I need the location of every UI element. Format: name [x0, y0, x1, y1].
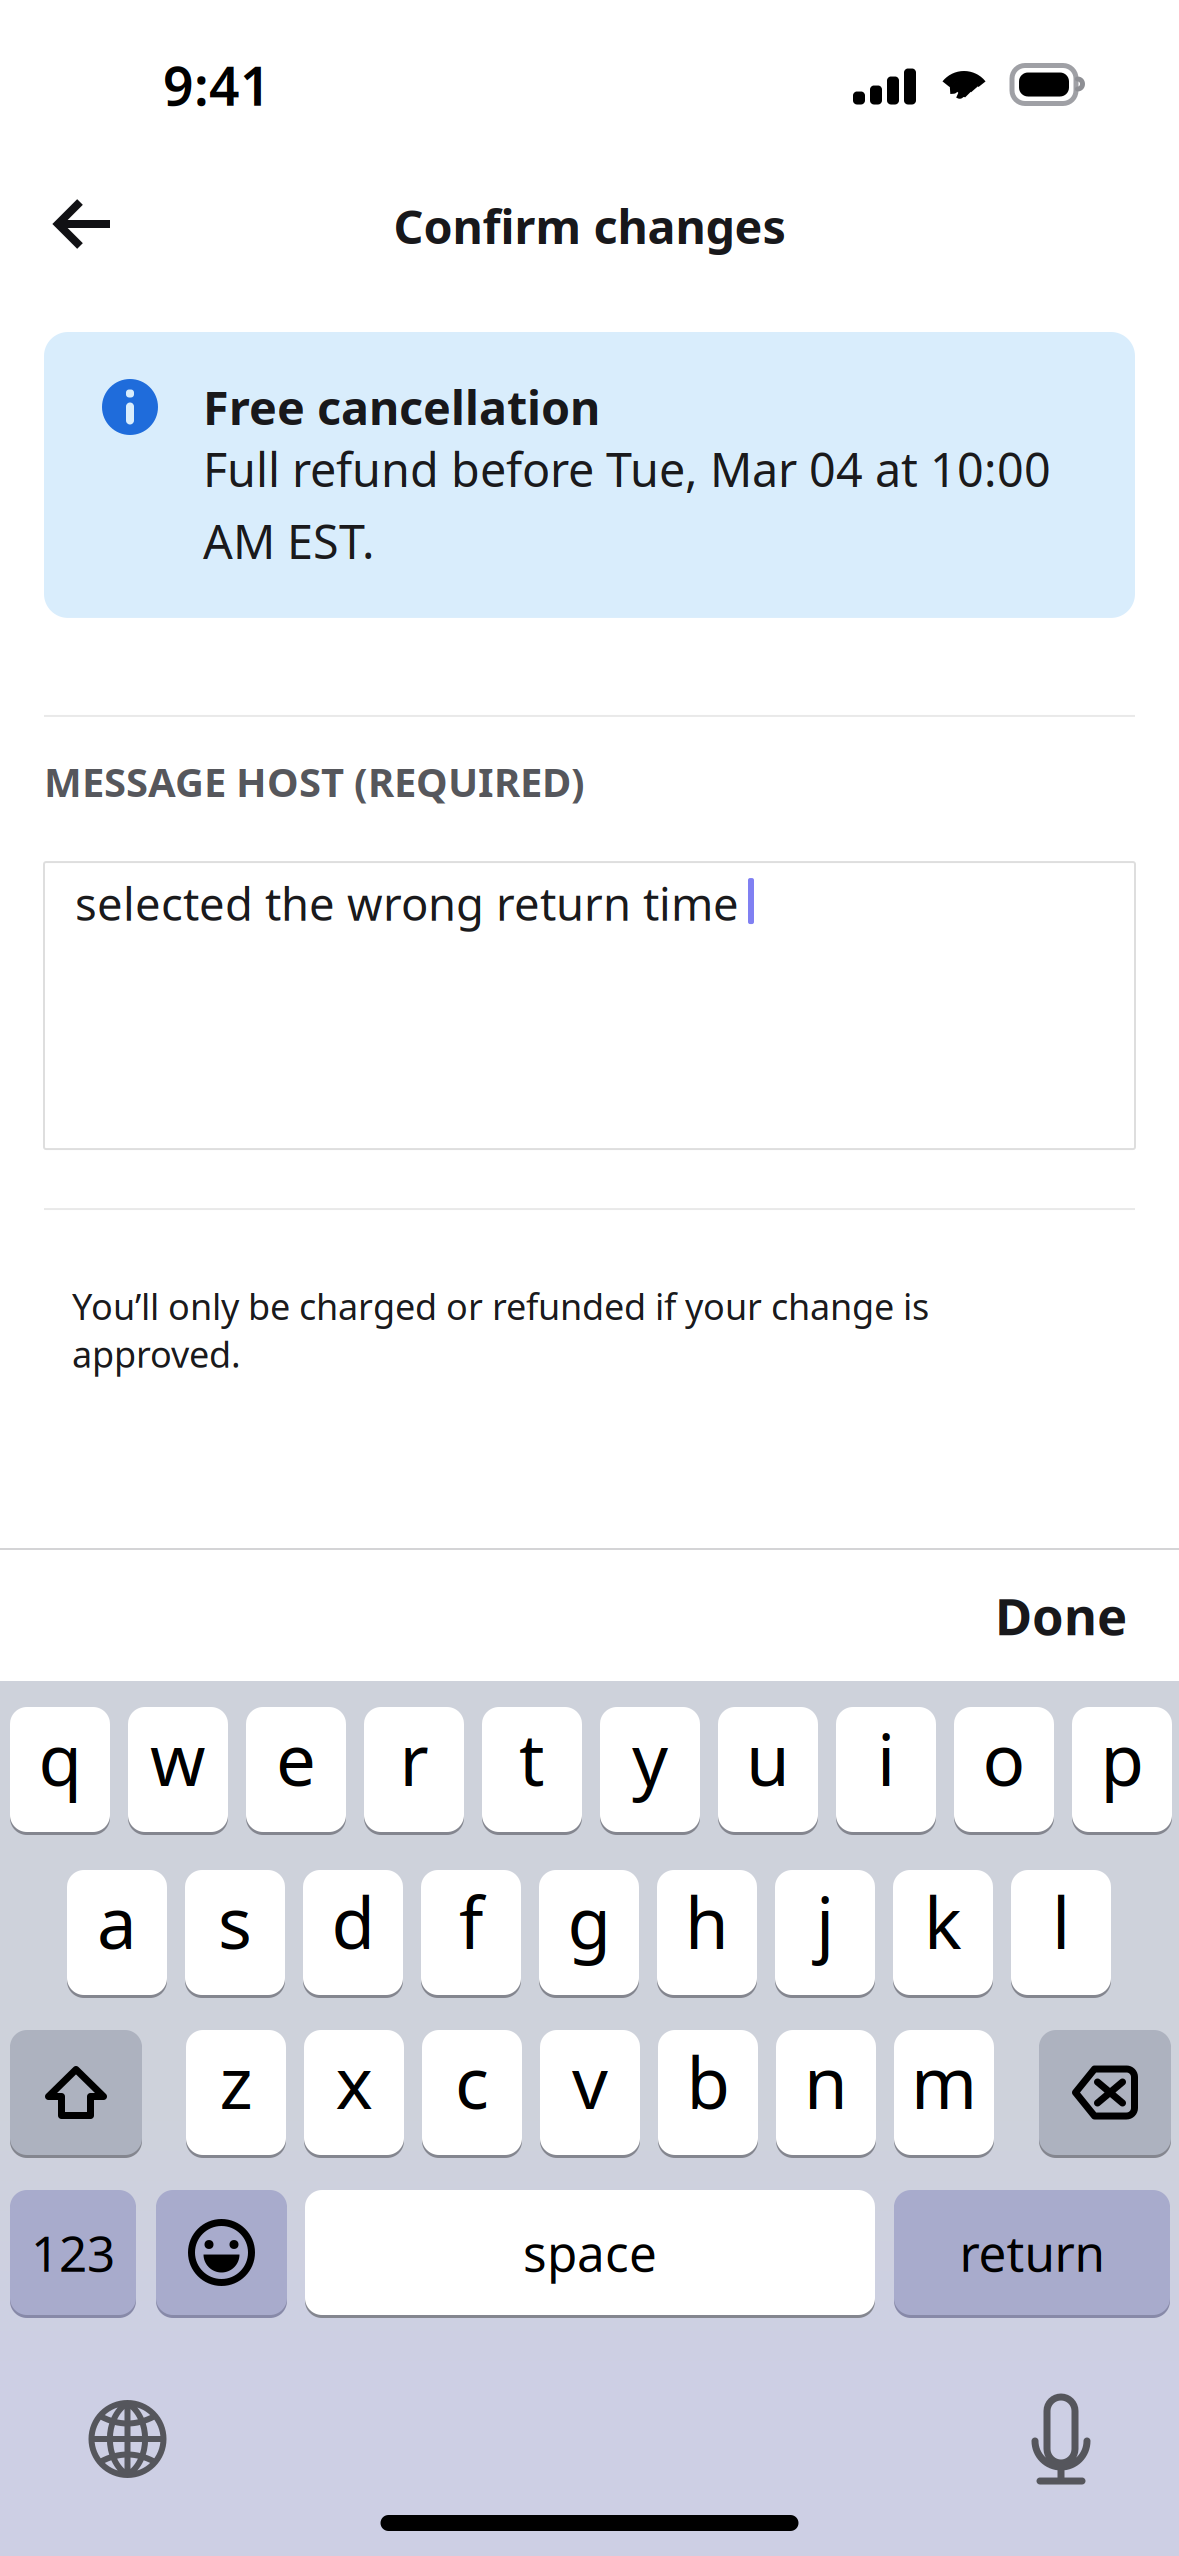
staticText: j — [816, 1875, 834, 1968]
staticText: z — [219, 2035, 252, 2128]
staticText: Done — [995, 1582, 1127, 1649]
button[interactable]: h — [657, 1870, 757, 1995]
button[interactable]: Shift — [10, 2030, 142, 2155]
button[interactable]: j — [775, 1870, 875, 1995]
staticText: space — [523, 2220, 657, 2285]
button[interactable]: 123 — [10, 2190, 136, 2315]
staticText: p — [1100, 1712, 1143, 1805]
button[interactable]: g — [539, 1870, 639, 1995]
staticText: g — [567, 1875, 610, 1968]
button[interactable]: Emoji — [156, 2190, 287, 2315]
staticText: w — [150, 1712, 206, 1805]
staticText: q — [38, 1712, 81, 1805]
button[interactable]: return — [894, 2190, 1170, 2315]
button[interactable]: i — [836, 1707, 936, 1832]
staticText: m — [911, 2035, 977, 2128]
button[interactable]: Next keyboard — [66, 2377, 189, 2500]
staticText: Confirm changes — [393, 195, 785, 257]
button[interactable]: x — [304, 2030, 404, 2155]
button[interactable]: a — [67, 1870, 167, 1995]
staticText: 9:41 — [163, 50, 271, 120]
staticText: Full refund before Tue, Mar 04 at 10:00 … — [203, 438, 1051, 572]
staticText: b — [686, 2035, 729, 2128]
button[interactable]: f — [421, 1870, 521, 1995]
button[interactable]: Done — [943, 1548, 1179, 1683]
button[interactable]: space — [305, 2190, 875, 2315]
button[interactable]: p — [1072, 1707, 1172, 1832]
button[interactable]: r — [364, 1707, 464, 1832]
button[interactable]: Dictate — [1013, 2373, 1109, 2505]
staticText: v — [572, 2035, 608, 2128]
button[interactable]: Delete — [1039, 2030, 1171, 2155]
staticText: MESSAGE HOST (REQUIRED) — [44, 755, 585, 808]
staticText: o — [982, 1712, 1025, 1805]
staticText: k — [924, 1875, 962, 1968]
button[interactable]: o — [954, 1707, 1054, 1832]
staticText: s — [218, 1875, 252, 1968]
button[interactable]: w — [128, 1707, 228, 1832]
button[interactable]: q — [10, 1707, 110, 1832]
staticText: l — [1052, 1875, 1070, 1968]
button[interactable]: Back — [0, 173, 154, 297]
staticText: return — [959, 2220, 1104, 2285]
staticText: t — [519, 1712, 545, 1805]
button[interactable]: b — [658, 2030, 758, 2155]
staticText: selected the wrong return time — [75, 873, 739, 933]
staticText: e — [276, 1712, 316, 1805]
button[interactable]: z — [186, 2030, 286, 2155]
button[interactable]: n — [776, 2030, 876, 2155]
button[interactable]: e — [246, 1707, 346, 1832]
button[interactable]: m — [894, 2030, 994, 2155]
staticText: i — [877, 1712, 895, 1805]
staticText: 123 — [31, 2220, 115, 2285]
staticText: n — [804, 2035, 848, 2128]
staticText: c — [455, 2035, 489, 2128]
staticText: h — [685, 1875, 729, 1968]
button[interactable]: d — [303, 1870, 403, 1995]
button[interactable]: v — [540, 2030, 640, 2155]
staticText: u — [746, 1712, 790, 1805]
staticText: You’ll only be charged or refunded if yo… — [72, 1282, 929, 1378]
staticText: f — [459, 1875, 483, 1968]
staticText: y — [632, 1712, 668, 1805]
staticText: Free cancellation — [203, 376, 600, 438]
button[interactable]: c — [422, 2030, 522, 2155]
button[interactable]: u — [718, 1707, 818, 1832]
button[interactable]: k — [893, 1870, 993, 1995]
staticText: x — [335, 2035, 372, 2128]
button[interactable]: y — [600, 1707, 700, 1832]
button[interactable]: s — [185, 1870, 285, 1995]
button[interactable]: l — [1011, 1870, 1111, 1995]
staticText: a — [97, 1875, 137, 1968]
button[interactable]: t — [482, 1707, 582, 1832]
staticText: r — [399, 1712, 428, 1805]
staticText: d — [331, 1875, 374, 1968]
